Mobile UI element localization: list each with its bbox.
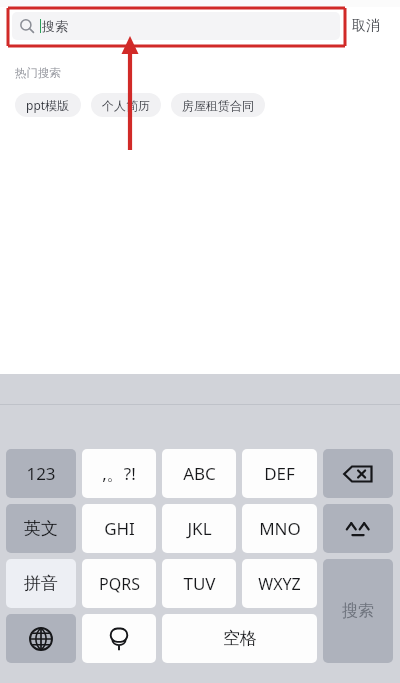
button[interactable]: 英文: [6, 504, 76, 553]
button[interactable]: 切换输入法: [6, 614, 76, 663]
button[interactable]: MNO: [242, 504, 317, 553]
staticText: 房屋租赁合同: [182, 98, 254, 113]
staticText: GHI: [104, 517, 135, 540]
button[interactable]: 拼音: [6, 559, 76, 608]
staticText: 空格: [223, 628, 257, 649]
staticText: PQRS: [99, 573, 140, 595]
button[interactable]: 搜索: [12, 12, 340, 40]
staticText: ppt模版: [26, 97, 70, 113]
button[interactable]: ,。?!: [82, 449, 156, 498]
button[interactable]: 123: [6, 449, 76, 498]
staticText: 搜索: [42, 18, 68, 34]
staticText: DEF: [264, 462, 295, 485]
staticText: ABC: [183, 462, 216, 485]
button[interactable]: WXYZ: [242, 559, 317, 608]
button[interactable]: 个人简历: [91, 93, 161, 117]
staticText: WXYZ: [258, 573, 301, 595]
button[interactable]: TUV: [162, 559, 236, 608]
staticText: 搜索: [342, 601, 374, 621]
button[interactable]: JKL: [162, 504, 236, 553]
button[interactable]: 退格: [323, 449, 393, 498]
staticText: 拼音: [24, 573, 58, 594]
staticText: 取消: [352, 17, 380, 35]
staticText: 个人简历: [102, 98, 150, 113]
button[interactable]: ABC: [162, 449, 236, 498]
button[interactable]: 表情: [323, 504, 393, 553]
staticText: MNO: [259, 517, 301, 540]
staticText: ,。?!: [102, 462, 136, 485]
button[interactable]: 语音输入: [82, 614, 156, 663]
staticText: 热门搜索: [15, 66, 61, 80]
staticText: JKL: [187, 517, 212, 540]
button[interactable]: GHI: [82, 504, 156, 553]
staticText: TUV: [183, 572, 216, 595]
button[interactable]: 房屋租赁合同: [171, 93, 265, 117]
staticText: 123: [26, 462, 56, 485]
button[interactable]: 搜索: [323, 559, 393, 663]
button[interactable]: 空格: [162, 614, 317, 663]
staticText: 英文: [24, 518, 58, 539]
button[interactable]: ppt模版: [15, 93, 81, 117]
button[interactable]: 取消: [349, 14, 383, 38]
button[interactable]: PQRS: [82, 559, 156, 608]
button[interactable]: DEF: [242, 449, 317, 498]
